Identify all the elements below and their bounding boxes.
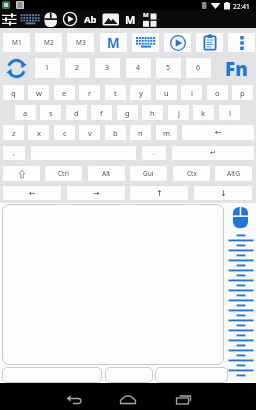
staticText: r (88, 88, 92, 98)
staticText: AltG (227, 169, 240, 178)
button[interactable]: AltG (214, 165, 253, 182)
staticText: M (107, 34, 120, 52)
staticText: , (13, 148, 15, 158)
button[interactable]: Fn (217, 56, 256, 78)
staticText: y (139, 88, 143, 98)
staticText: 3 (105, 63, 110, 73)
staticText: M2 (44, 38, 54, 47)
staticText: v (88, 128, 92, 138)
button[interactable]: p (231, 84, 254, 101)
button[interactable] (195, 32, 224, 53)
button[interactable]: Ctrl (44, 165, 83, 182)
button[interactable]: z (2, 124, 25, 141)
staticText: Ab (84, 13, 97, 26)
staticText: 6 (196, 63, 201, 73)
staticText: q (11, 88, 16, 98)
button[interactable]: b (104, 124, 127, 141)
button[interactable]: d (65, 104, 88, 121)
button[interactable] (3, 58, 30, 79)
button[interactable]: e (53, 84, 76, 101)
button[interactable]: k (192, 104, 215, 121)
staticText: Ctrl (58, 169, 69, 178)
button[interactable]: v (78, 124, 101, 141)
button[interactable]: 4 (125, 57, 152, 79)
button[interactable]: Gui (129, 165, 168, 182)
button[interactable]: g (116, 104, 139, 121)
button[interactable]: w (27, 84, 50, 101)
button[interactable] (2, 204, 224, 365)
button[interactable]: M1 (2, 32, 31, 53)
button[interactable] (105, 367, 153, 383)
button[interactable]: i (180, 84, 203, 101)
button[interactable] (131, 32, 160, 53)
button[interactable]: M2 (34, 32, 63, 53)
button[interactable]: o (206, 84, 229, 101)
staticText: p (240, 88, 245, 98)
button[interactable]: t (104, 84, 127, 101)
button[interactable]: x (27, 124, 50, 141)
staticText: j (178, 108, 180, 118)
staticText: o (215, 88, 220, 98)
button[interactable]: u (155, 84, 178, 101)
button[interactable] (233, 207, 248, 228)
button[interactable] (155, 367, 228, 383)
button[interactable] (228, 234, 254, 378)
button[interactable]: n (129, 124, 152, 141)
staticText: → (93, 189, 100, 198)
staticText: ↵ (210, 149, 216, 157)
button[interactable]: y (129, 84, 152, 101)
staticText: Fn (225, 56, 248, 78)
button[interactable]: 3 (94, 57, 121, 79)
button[interactable]: . (141, 145, 167, 161)
staticText: n (138, 128, 143, 138)
button[interactable]: r (78, 84, 101, 101)
staticText: M (143, 11, 149, 19)
staticText: h (150, 108, 155, 118)
button[interactable]: ↵ (171, 145, 255, 161)
button[interactable]: Alt (87, 165, 126, 182)
staticText: ← (215, 128, 222, 137)
staticText: d (74, 108, 79, 118)
button[interactable]: M (99, 32, 128, 53)
staticText: ← (29, 189, 36, 198)
button[interactable]: f (90, 104, 113, 121)
button[interactable]: l (218, 104, 241, 121)
staticText: ↓ (220, 189, 227, 198)
button[interactable] (2, 367, 102, 383)
button[interactable]: s (39, 104, 62, 121)
button[interactable] (227, 32, 256, 53)
button[interactable]: → (66, 185, 126, 201)
button[interactable]: ↑ (129, 185, 189, 201)
button[interactable]: q (2, 84, 25, 101)
button[interactable]: c (53, 124, 76, 141)
button[interactable]: a (14, 104, 37, 121)
button[interactable]: M3 (66, 32, 95, 53)
button[interactable]: 6 (185, 57, 212, 79)
staticText: f (100, 108, 103, 118)
staticText: b (113, 128, 118, 138)
button[interactable]: 2 (64, 57, 91, 79)
button[interactable] (163, 32, 192, 53)
staticText: u (164, 88, 169, 98)
staticText: 22:41 (233, 2, 250, 11)
button[interactable]: m (155, 124, 178, 141)
button[interactable]: 5 (155, 57, 182, 79)
staticText: m (163, 128, 171, 138)
button[interactable] (2, 165, 41, 182)
button[interactable]: Ctx (172, 165, 211, 182)
staticText: t (114, 88, 117, 98)
button[interactable]: ← (181, 124, 255, 141)
staticText: l (229, 108, 231, 118)
staticText: 1 (45, 63, 50, 73)
button[interactable]: , (2, 145, 26, 161)
button[interactable]: ← (2, 185, 62, 201)
button[interactable]: j (167, 104, 190, 121)
staticText: ↑ (156, 189, 163, 198)
staticText: g (125, 108, 130, 118)
button[interactable]: ↓ (193, 185, 253, 201)
button[interactable]: 1 (34, 57, 61, 79)
button[interactable] (30, 145, 137, 161)
button[interactable]: h (141, 104, 164, 121)
staticText: M (125, 12, 136, 27)
staticText: . (153, 148, 155, 158)
